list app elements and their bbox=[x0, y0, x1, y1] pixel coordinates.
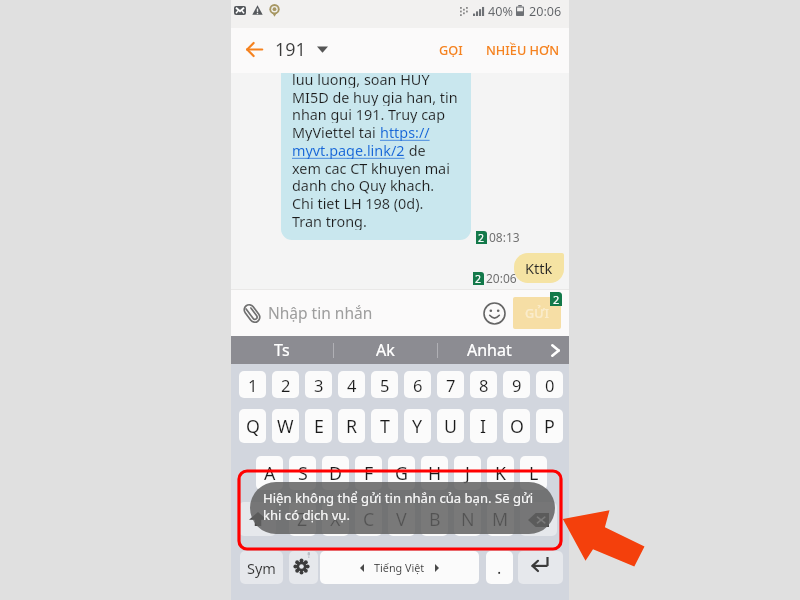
button[interactable]: luu luong, soan HUY bbox=[281, 73, 471, 240]
button[interactable] bbox=[289, 551, 318, 584]
button[interactable]: 6 bbox=[404, 371, 431, 398]
button[interactable]: J bbox=[454, 456, 481, 490]
button[interactable]: Kttk bbox=[514, 253, 564, 283]
button[interactable]: Q bbox=[239, 409, 266, 443]
button[interactable] bbox=[518, 551, 563, 584]
button[interactable]: 7 bbox=[437, 371, 464, 398]
button[interactable]: B bbox=[421, 502, 448, 536]
staticText: I bbox=[480, 414, 487, 438]
button[interactable]: K bbox=[487, 456, 514, 490]
button[interactable]: Ak bbox=[334, 336, 437, 364]
staticText: Chi tiet LH 198 (0d). bbox=[292, 194, 424, 212]
button[interactable]: Y bbox=[404, 409, 431, 443]
button[interactable] bbox=[520, 502, 557, 536]
button[interactable]: C bbox=[355, 502, 382, 536]
button[interactable]: U bbox=[437, 409, 464, 443]
button[interactable]: 191 bbox=[275, 28, 328, 70]
staticText: luu luong, soan HUY bbox=[292, 73, 430, 88]
staticText: 20:06 bbox=[529, 3, 562, 20]
button[interactable]: Z bbox=[289, 502, 316, 536]
button[interactable]: P bbox=[536, 409, 563, 443]
button[interactable]: 9 bbox=[503, 371, 530, 398]
button[interactable]: More suggestions bbox=[541, 336, 569, 364]
staticText: . bbox=[497, 557, 502, 579]
button[interactable]: E bbox=[305, 409, 332, 443]
staticText: B bbox=[429, 507, 441, 531]
staticText: P bbox=[544, 414, 555, 438]
staticText: R bbox=[346, 414, 358, 438]
staticText: F bbox=[364, 461, 374, 485]
button[interactable]: NHIỀU HƠN bbox=[480, 28, 564, 70]
staticText: M bbox=[492, 507, 509, 531]
button[interactable]: A bbox=[256, 456, 283, 490]
button[interactable]: S bbox=[289, 456, 316, 490]
button[interactable]: Sym bbox=[240, 551, 283, 584]
staticText: 3 bbox=[314, 374, 324, 396]
staticText: N bbox=[461, 507, 475, 531]
staticText: J bbox=[465, 461, 470, 485]
button[interactable]: I bbox=[470, 409, 497, 443]
staticText: Ts bbox=[274, 339, 290, 361]
staticText: danh cho Quy khach. bbox=[292, 176, 435, 194]
staticText: C bbox=[363, 507, 375, 531]
button[interactable]: . bbox=[486, 551, 513, 584]
button[interactable]: 0 bbox=[536, 371, 563, 398]
staticText: S bbox=[298, 461, 308, 485]
staticText: 7 bbox=[446, 374, 456, 396]
button[interactable]: M bbox=[487, 502, 514, 536]
staticText: 2 bbox=[478, 231, 485, 244]
staticText: myvt.page.link/2 bbox=[292, 141, 405, 159]
staticText: 0 bbox=[545, 374, 555, 396]
button[interactable] bbox=[320, 551, 479, 584]
button[interactable]: H bbox=[421, 456, 448, 490]
staticText: 08:13 bbox=[489, 229, 520, 245]
button[interactable]: W bbox=[272, 409, 299, 443]
staticText: A bbox=[264, 461, 276, 485]
button[interactable]: N bbox=[454, 502, 481, 536]
button[interactable]: 2 bbox=[272, 371, 299, 398]
button[interactable]: Anhat bbox=[438, 336, 541, 364]
staticText: D bbox=[329, 461, 342, 485]
button[interactable]: 3 bbox=[305, 371, 332, 398]
button[interactable]: X bbox=[322, 502, 349, 536]
button[interactable]: GỬI bbox=[513, 297, 561, 329]
staticText: X bbox=[330, 507, 341, 531]
staticText: https:// bbox=[380, 123, 430, 141]
button[interactable]: Emoji bbox=[478, 297, 510, 329]
button[interactable]: 5 bbox=[371, 371, 398, 398]
staticText: Tran trong. bbox=[292, 212, 367, 230]
button[interactable]: 1 bbox=[239, 371, 266, 398]
staticText: Nhập tin nhắn bbox=[268, 302, 373, 323]
staticText: Q bbox=[246, 414, 260, 438]
staticText: H bbox=[428, 461, 442, 485]
button[interactable]: O bbox=[503, 409, 530, 443]
button[interactable]: D bbox=[322, 456, 349, 490]
button[interactable]: V bbox=[388, 502, 415, 536]
button[interactable] bbox=[239, 502, 276, 536]
button[interactable]: 8 bbox=[470, 371, 497, 398]
staticText: Anhat bbox=[467, 339, 512, 361]
staticText: MI5D de huy gia han, tin bbox=[292, 88, 458, 106]
staticText: 4 bbox=[347, 374, 357, 396]
staticText: Hiện không thể gửi tin nhắn của bạn. Sẽ … bbox=[263, 489, 534, 506]
staticText: K bbox=[495, 461, 507, 485]
button[interactable]: GỌI bbox=[427, 28, 474, 70]
button[interactable]: Ts bbox=[231, 336, 333, 364]
button[interactable]: Attach file bbox=[236, 297, 268, 329]
staticText: Ak bbox=[376, 339, 395, 361]
staticText: Z bbox=[297, 507, 308, 531]
staticText: L bbox=[529, 461, 539, 485]
staticText: 20:06 bbox=[486, 270, 517, 286]
button[interactable]: G bbox=[388, 456, 415, 490]
staticText: W bbox=[277, 414, 294, 438]
staticText: 9 bbox=[512, 374, 522, 396]
button[interactable]: T bbox=[371, 409, 398, 443]
staticText: nhan gui 191. Truy cap bbox=[292, 105, 446, 123]
button[interactable]: R bbox=[338, 409, 365, 443]
staticText: GỬI bbox=[525, 305, 550, 322]
button[interactable]: F bbox=[355, 456, 382, 490]
staticText: 2 bbox=[553, 292, 560, 306]
button[interactable]: L bbox=[520, 456, 547, 490]
button[interactable]: Back bbox=[234, 28, 274, 70]
button[interactable]: 4 bbox=[338, 371, 365, 398]
